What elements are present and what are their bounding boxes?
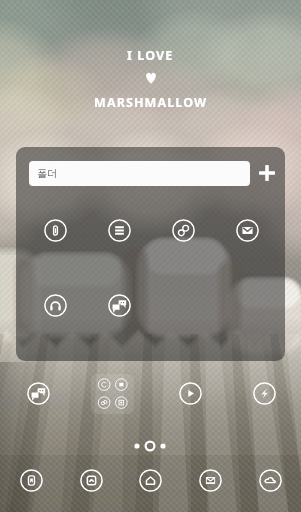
button[interactable]: Torch [253,382,276,405]
button[interactable]: Browser [259,469,282,492]
button[interactable]: Flashlight [44,219,67,242]
button[interactable]: Menu [108,219,131,242]
button[interactable]: Mail [236,219,259,242]
staticText: MARSHMALLOW [94,94,208,111]
button[interactable]: Messages [108,294,131,317]
button[interactable]: Messaging [199,469,222,492]
button[interactable]: Music [44,294,67,317]
staticText: 폴더 [37,167,57,180]
button[interactable]: Folder [91,374,134,414]
button[interactable]: Add [256,162,278,184]
button[interactable]: Phone [20,469,43,492]
button[interactable]: Search folder [29,161,250,186]
staticText: I LOVE [127,47,174,64]
button[interactable]: Home [139,469,162,492]
button[interactable]: Play [179,382,202,405]
button[interactable]: Share [172,219,195,242]
button[interactable]: Contacts [80,469,103,492]
button[interactable]: Messages [27,382,50,405]
